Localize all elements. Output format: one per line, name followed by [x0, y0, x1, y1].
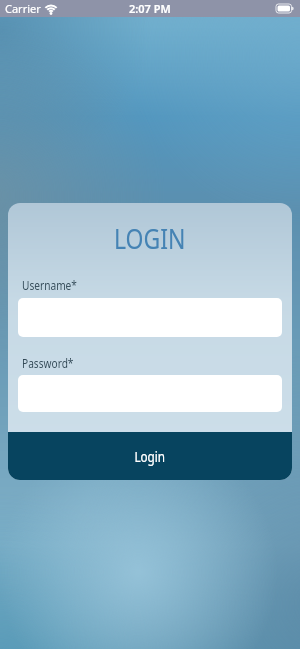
staticText: LOGIN	[114, 219, 186, 257]
staticText: Carrier	[5, 1, 41, 16]
staticText: Password*	[22, 354, 73, 372]
staticText: 2:07 PM	[129, 1, 171, 16]
staticText: Login	[134, 446, 166, 466]
staticText: Username*	[22, 276, 77, 294]
button[interactable]: Login	[8, 432, 292, 480]
